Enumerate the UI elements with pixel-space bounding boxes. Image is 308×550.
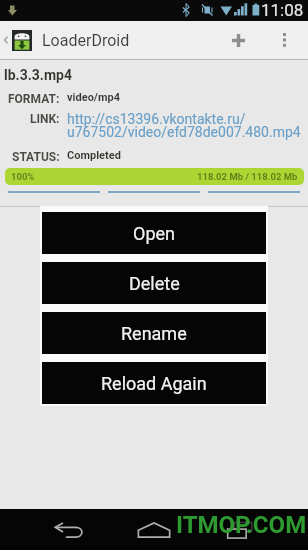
button[interactable]: More options [267, 21, 301, 59]
staticText: Delete [129, 273, 180, 294]
button[interactable]: Back [0, 21, 12, 59]
staticText: Open [133, 223, 175, 244]
staticText: STATUS: [12, 150, 60, 164]
staticText: u767502/video/efd78de007.480.mp4 [67, 124, 301, 140]
staticText: lb.3.3.mp4 [4, 67, 72, 83]
staticText: 118.02 Mb / 118.02 Mb [197, 171, 298, 182]
button[interactable]: Reload Again [40, 356, 268, 406]
staticText: Rename [121, 323, 187, 344]
button[interactable]: Recent apps [210, 509, 270, 550]
staticText: Completed [67, 149, 121, 162]
staticText: LoaderDroid [42, 31, 130, 50]
button[interactable]: Add download [209, 21, 267, 59]
staticText: LINK: [30, 112, 60, 126]
button[interactable]: Back [39, 509, 99, 550]
staticText: ITMOP.COM [176, 511, 307, 539]
staticText: http://cs13396.vkontakte.ru/ [67, 111, 246, 127]
button[interactable]: Open [40, 206, 268, 256]
staticText: 100% [11, 171, 35, 182]
staticText: 11:08 [261, 0, 304, 20]
button[interactable]: Delete [40, 256, 268, 306]
staticText: FORMAT: [8, 92, 60, 106]
button[interactable]: Home [124, 509, 184, 550]
staticText: video/mp4 [67, 91, 120, 104]
staticText: Reload Again [101, 373, 207, 394]
button[interactable]: Rename [40, 306, 268, 356]
